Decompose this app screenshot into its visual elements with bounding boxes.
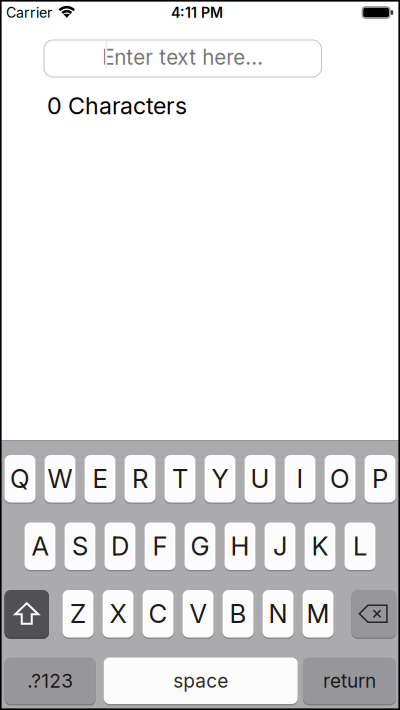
button[interactable]: L <box>344 522 375 570</box>
button[interactable]: P <box>364 455 395 502</box>
button[interactable]: Enter text here <box>44 40 321 77</box>
button[interactable]: D <box>104 522 135 570</box>
button[interactable]: O <box>324 455 355 502</box>
button[interactable]: A <box>24 522 55 570</box>
staticText: Y <box>211 463 228 494</box>
button[interactable]: return <box>303 657 396 704</box>
staticText: W <box>47 463 72 494</box>
staticText: K <box>311 531 328 562</box>
staticText: H <box>230 531 249 562</box>
button[interactable]: Z <box>62 590 93 637</box>
staticText: U <box>250 463 269 494</box>
staticText: Q <box>10 463 30 494</box>
staticText: D <box>111 531 129 562</box>
staticText: 4:11 PM <box>171 4 223 21</box>
staticText: P <box>372 463 388 494</box>
button[interactable]: C <box>142 590 173 637</box>
staticText: J <box>273 531 287 562</box>
button[interactable]: J <box>264 522 295 570</box>
staticText: A <box>31 531 48 562</box>
staticText: Carrier <box>6 4 52 21</box>
staticText: B <box>229 598 246 629</box>
button[interactable]: F <box>144 522 175 570</box>
staticText: O <box>330 463 350 494</box>
staticText: Z <box>70 598 86 629</box>
button[interactable]: B <box>222 590 253 637</box>
staticText: .?123 <box>27 669 73 692</box>
button[interactable]: Y <box>204 455 235 502</box>
staticText: space <box>173 669 228 692</box>
button[interactable]: X <box>102 590 133 637</box>
staticText: F <box>152 531 167 562</box>
staticText: L <box>353 531 367 562</box>
button[interactable]: M <box>302 590 333 637</box>
button[interactable]: Q <box>4 455 35 502</box>
staticText: M <box>306 598 329 629</box>
staticText: N <box>268 598 287 629</box>
button[interactable]: Delete <box>351 590 396 637</box>
staticText: G <box>190 531 209 562</box>
button[interactable]: V <box>182 590 213 637</box>
button[interactable]: Shift <box>4 590 49 637</box>
staticText: E <box>92 463 107 494</box>
button[interactable]: R <box>124 455 155 502</box>
button[interactable]: U <box>244 455 275 502</box>
staticText: X <box>109 598 126 629</box>
button[interactable]: T <box>164 455 195 502</box>
button[interactable]: space <box>104 657 298 704</box>
staticText: Enter text here... <box>102 45 263 70</box>
button[interactable]: N <box>262 590 293 637</box>
staticText: R <box>132 463 148 494</box>
staticText: C <box>148 598 167 629</box>
button[interactable]: G <box>184 522 215 570</box>
staticText: 0 Characters <box>47 92 187 120</box>
button[interactable]: S <box>64 522 95 570</box>
staticText: V <box>189 598 206 629</box>
button[interactable]: K <box>304 522 335 570</box>
button[interactable]: .?123 <box>4 657 96 704</box>
button[interactable]: W <box>44 455 75 502</box>
button[interactable]: I <box>284 455 315 502</box>
button[interactable]: E <box>84 455 115 502</box>
staticText: I <box>296 463 303 494</box>
staticText: return <box>323 669 376 692</box>
staticText: T <box>172 463 188 494</box>
staticText: S <box>72 531 88 562</box>
button[interactable]: H <box>224 522 255 570</box>
